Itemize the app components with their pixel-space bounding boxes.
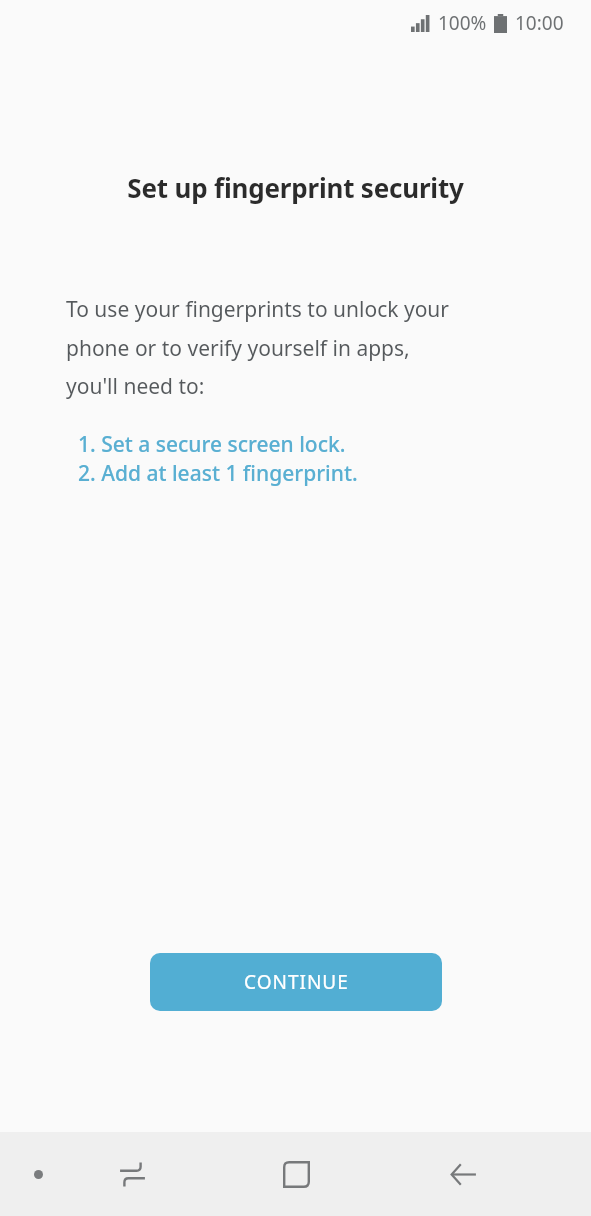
button[interactable]: Back	[436, 1147, 490, 1201]
staticText: CONTINUE	[244, 969, 349, 995]
staticText: Set up fingerprint security	[0, 170, 591, 205]
staticText: 1. Set a secure screen lock.	[78, 430, 346, 459]
staticText: 2. Add at least 1 fingerprint.	[78, 459, 358, 488]
staticText: 10:00	[515, 10, 564, 36]
button[interactable]: CONTINUE	[150, 953, 442, 1011]
staticText: 100%	[438, 10, 487, 36]
staticText: To use your fingerprints to unlock your …	[66, 295, 450, 400]
button[interactable]: Recent apps	[105, 1147, 159, 1201]
other: Indicator	[22, 1158, 54, 1190]
button[interactable]: Home	[269, 1147, 323, 1201]
